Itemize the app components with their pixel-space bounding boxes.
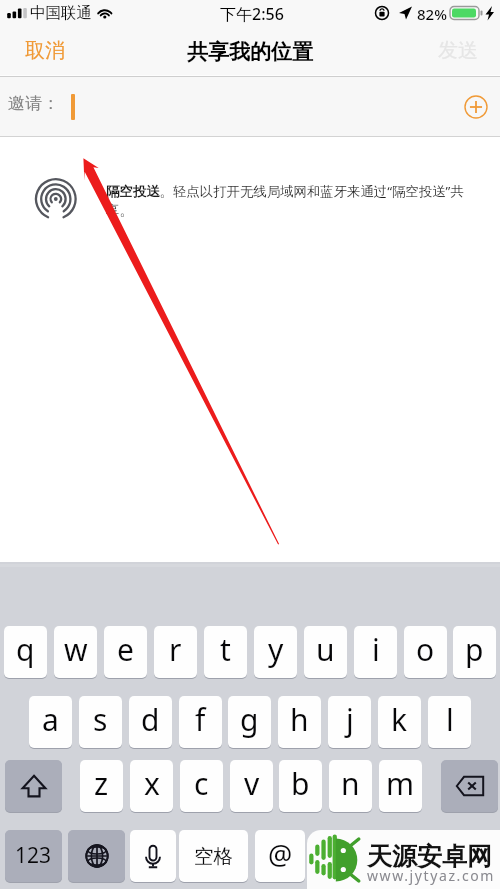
button[interactable]: r (154, 626, 197, 678)
button[interactable]: e (104, 626, 147, 678)
staticText: m (386, 763, 415, 804)
staticText: 82% (417, 4, 447, 24)
button[interactable]: mic (130, 830, 176, 882)
staticText: x (144, 763, 160, 804)
staticText: d (141, 699, 160, 740)
staticText: f (195, 699, 206, 740)
button[interactable]: 换行 (382, 830, 497, 882)
staticText: z (94, 763, 109, 804)
button[interactable]: globe (68, 830, 125, 882)
button[interactable]: Add contact (464, 95, 488, 119)
button[interactable]: k (378, 696, 421, 748)
staticText: 换行 (420, 844, 459, 869)
staticText: a (42, 699, 59, 740)
staticText: 取消 (25, 38, 65, 63)
button[interactable]: q (4, 626, 47, 678)
button[interactable]: j (328, 696, 371, 748)
button[interactable]: n (329, 760, 372, 812)
staticText: y (268, 629, 284, 670)
staticText: j (346, 699, 354, 740)
staticText: 发送 (438, 38, 478, 63)
button[interactable]: z (80, 760, 123, 812)
staticText: 。 (338, 844, 358, 869)
button[interactable]: u (304, 626, 347, 678)
staticText: 隔空投送。轻点以打开无线局域网和蓝牙来通过“隔空投送”共享。 (106, 182, 476, 219)
staticText: 空格 (194, 844, 233, 869)
button[interactable]: w (54, 626, 97, 678)
button[interactable]: h (278, 696, 321, 748)
button[interactable]: f (179, 696, 222, 748)
staticText: www.jytyaz.com (367, 866, 496, 885)
staticText: e (117, 629, 134, 670)
button[interactable]: p (453, 626, 496, 678)
button[interactable]: c (180, 760, 223, 812)
staticText: s (93, 699, 108, 740)
button[interactable]: 123 (5, 830, 62, 882)
button[interactable]: back (441, 760, 498, 812)
staticText: t (220, 629, 231, 670)
button[interactable]: 。 (320, 830, 375, 882)
staticText: n (341, 763, 360, 804)
staticText: o (416, 629, 435, 670)
staticText: 邀请： (8, 93, 59, 114)
button[interactable]: 发送 (417, 31, 500, 70)
staticText: k (391, 699, 408, 740)
button[interactable]: v (230, 760, 273, 812)
button[interactable]: b (279, 760, 322, 812)
button[interactable]: 取消 (4, 31, 86, 70)
staticText: 中国联通 (30, 3, 92, 23)
staticText: p (465, 629, 484, 670)
button[interactable]: d (129, 696, 172, 748)
staticText: 共享我的位置 (187, 39, 313, 65)
staticText: w (64, 629, 88, 670)
button[interactable]: m (379, 760, 422, 812)
staticText: 123 (15, 841, 52, 870)
button[interactable]: i (354, 626, 397, 678)
button[interactable]: s (79, 696, 122, 748)
staticText: 下午2:56 (220, 3, 284, 25)
staticText: c (194, 763, 209, 804)
button[interactable]: x (130, 760, 173, 812)
staticText: v (244, 763, 260, 804)
staticText: i (372, 629, 380, 670)
button[interactable]: 空格 (179, 830, 248, 882)
button[interactable]: g (228, 696, 271, 748)
staticText: @ (268, 836, 293, 873)
staticText: l (446, 699, 454, 740)
staticText: q (16, 629, 35, 670)
button[interactable]: t (204, 626, 247, 678)
staticText: u (316, 629, 335, 670)
button[interactable]: y (254, 626, 297, 678)
staticText: 天源安卓网 (367, 841, 492, 872)
staticText: h (290, 699, 309, 740)
staticText: g (240, 699, 259, 740)
staticText: r (169, 629, 182, 670)
button[interactable]: shift (5, 760, 62, 812)
button[interactable]: o (404, 626, 447, 678)
button[interactable]: l (428, 696, 471, 748)
staticText: b (291, 763, 310, 804)
button[interactable]: @ (255, 830, 305, 882)
button[interactable]: a (29, 696, 72, 748)
